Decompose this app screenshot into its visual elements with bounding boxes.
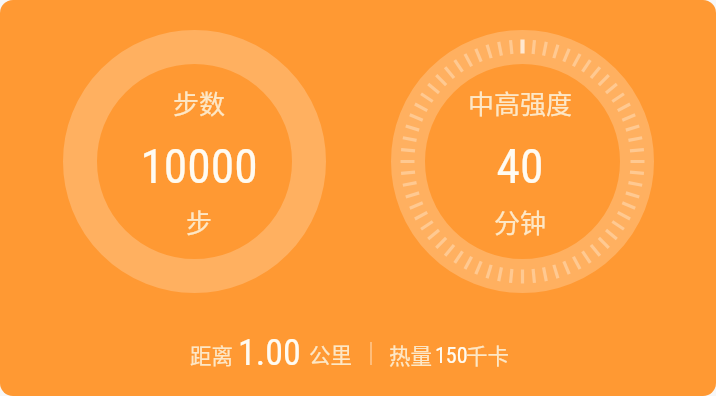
staticText: 千卡 bbox=[466, 339, 510, 370]
button[interactable]: 热量 bbox=[380, 330, 520, 372]
staticText: 中高强度 bbox=[450, 84, 590, 122]
staticText: 步数 bbox=[129, 84, 269, 122]
button[interactable]: 距离 bbox=[178, 330, 378, 372]
staticText: 10000 bbox=[109, 139, 289, 195]
staticText: 150 bbox=[435, 343, 468, 369]
staticText: 距离 bbox=[190, 339, 234, 370]
staticText: 40 bbox=[430, 139, 610, 195]
staticText: 步 bbox=[129, 203, 269, 241]
staticText: 1.00 bbox=[238, 332, 301, 374]
staticText: 热量 bbox=[389, 339, 433, 370]
staticText: 公里 bbox=[309, 338, 353, 369]
button[interactable]: 步数 10000 步 bbox=[63, 30, 326, 293]
staticText: 分钟 bbox=[450, 203, 590, 241]
button[interactable]: 中高强度 40 分钟 bbox=[391, 30, 654, 293]
